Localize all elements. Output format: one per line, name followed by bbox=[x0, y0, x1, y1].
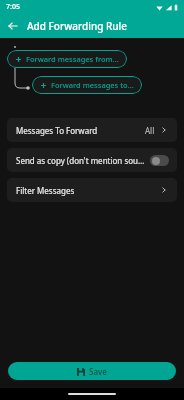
staticText: Send as copy (don't mention source) bbox=[16, 155, 146, 166]
button[interactable]: Send as copy (don't mention source) bbox=[7, 148, 177, 172]
button[interactable]: Filter Messages bbox=[7, 178, 177, 202]
button[interactable]: Messages To Forward bbox=[7, 118, 177, 142]
staticText: Messages To Forward bbox=[16, 125, 145, 136]
button[interactable]: Send as copy toggle bbox=[150, 155, 169, 166]
button[interactable]: Save bbox=[8, 362, 176, 380]
staticText: Forward messages from... bbox=[26, 54, 119, 64]
button[interactable]: Forward messages from... bbox=[7, 50, 127, 68]
staticText: Filter Messages bbox=[16, 185, 160, 196]
staticText: All bbox=[145, 125, 155, 136]
staticText: Save bbox=[89, 366, 107, 377]
staticText: Add Forwarding Rule bbox=[27, 19, 127, 33]
staticText: Forward messages to... bbox=[51, 80, 134, 90]
button[interactable]: Back bbox=[5, 18, 21, 34]
button[interactable]: Forward messages to... bbox=[32, 76, 142, 94]
staticText: 7:05 bbox=[6, 2, 20, 12]
